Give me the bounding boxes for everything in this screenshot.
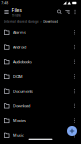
staticText: 7:48 bbox=[1, 1, 8, 5]
button[interactable]: Add bbox=[67, 126, 77, 136]
button[interactable]: Audiobooks bbox=[0, 54, 81, 69]
staticText: Download bbox=[43, 19, 58, 23]
staticText: Movies bbox=[13, 118, 26, 123]
staticText: Alarms bbox=[13, 30, 26, 35]
button[interactable]: Sort bbox=[63, 6, 71, 17]
button[interactable]: Movies bbox=[0, 113, 81, 128]
button[interactable]: DCIM bbox=[0, 69, 81, 84]
staticText: Download bbox=[13, 103, 30, 108]
staticText: Documents bbox=[13, 88, 33, 94]
button[interactable]: Documents bbox=[0, 84, 81, 98]
button[interactable]: Alarms bbox=[0, 25, 81, 40]
button[interactable]: Internal shared storage bbox=[4, 19, 39, 23]
button[interactable]: Menu bbox=[2, 6, 11, 17]
staticText: DCIM bbox=[13, 74, 23, 79]
staticText: Android bbox=[13, 44, 26, 50]
staticText: Music bbox=[13, 133, 24, 138]
button[interactable]: Download bbox=[0, 98, 81, 113]
button[interactable]: Android bbox=[0, 40, 81, 54]
staticText: › bbox=[41, 19, 42, 23]
button[interactable]: Search bbox=[55, 6, 63, 17]
staticText: Audiobooks bbox=[13, 59, 32, 64]
staticText: Files bbox=[11, 7, 21, 13]
staticText: 79 items bbox=[11, 14, 20, 17]
button[interactable]: Music bbox=[0, 128, 81, 143]
button[interactable]: More options bbox=[71, 6, 78, 17]
staticText: Internal shared storage bbox=[4, 19, 39, 23]
